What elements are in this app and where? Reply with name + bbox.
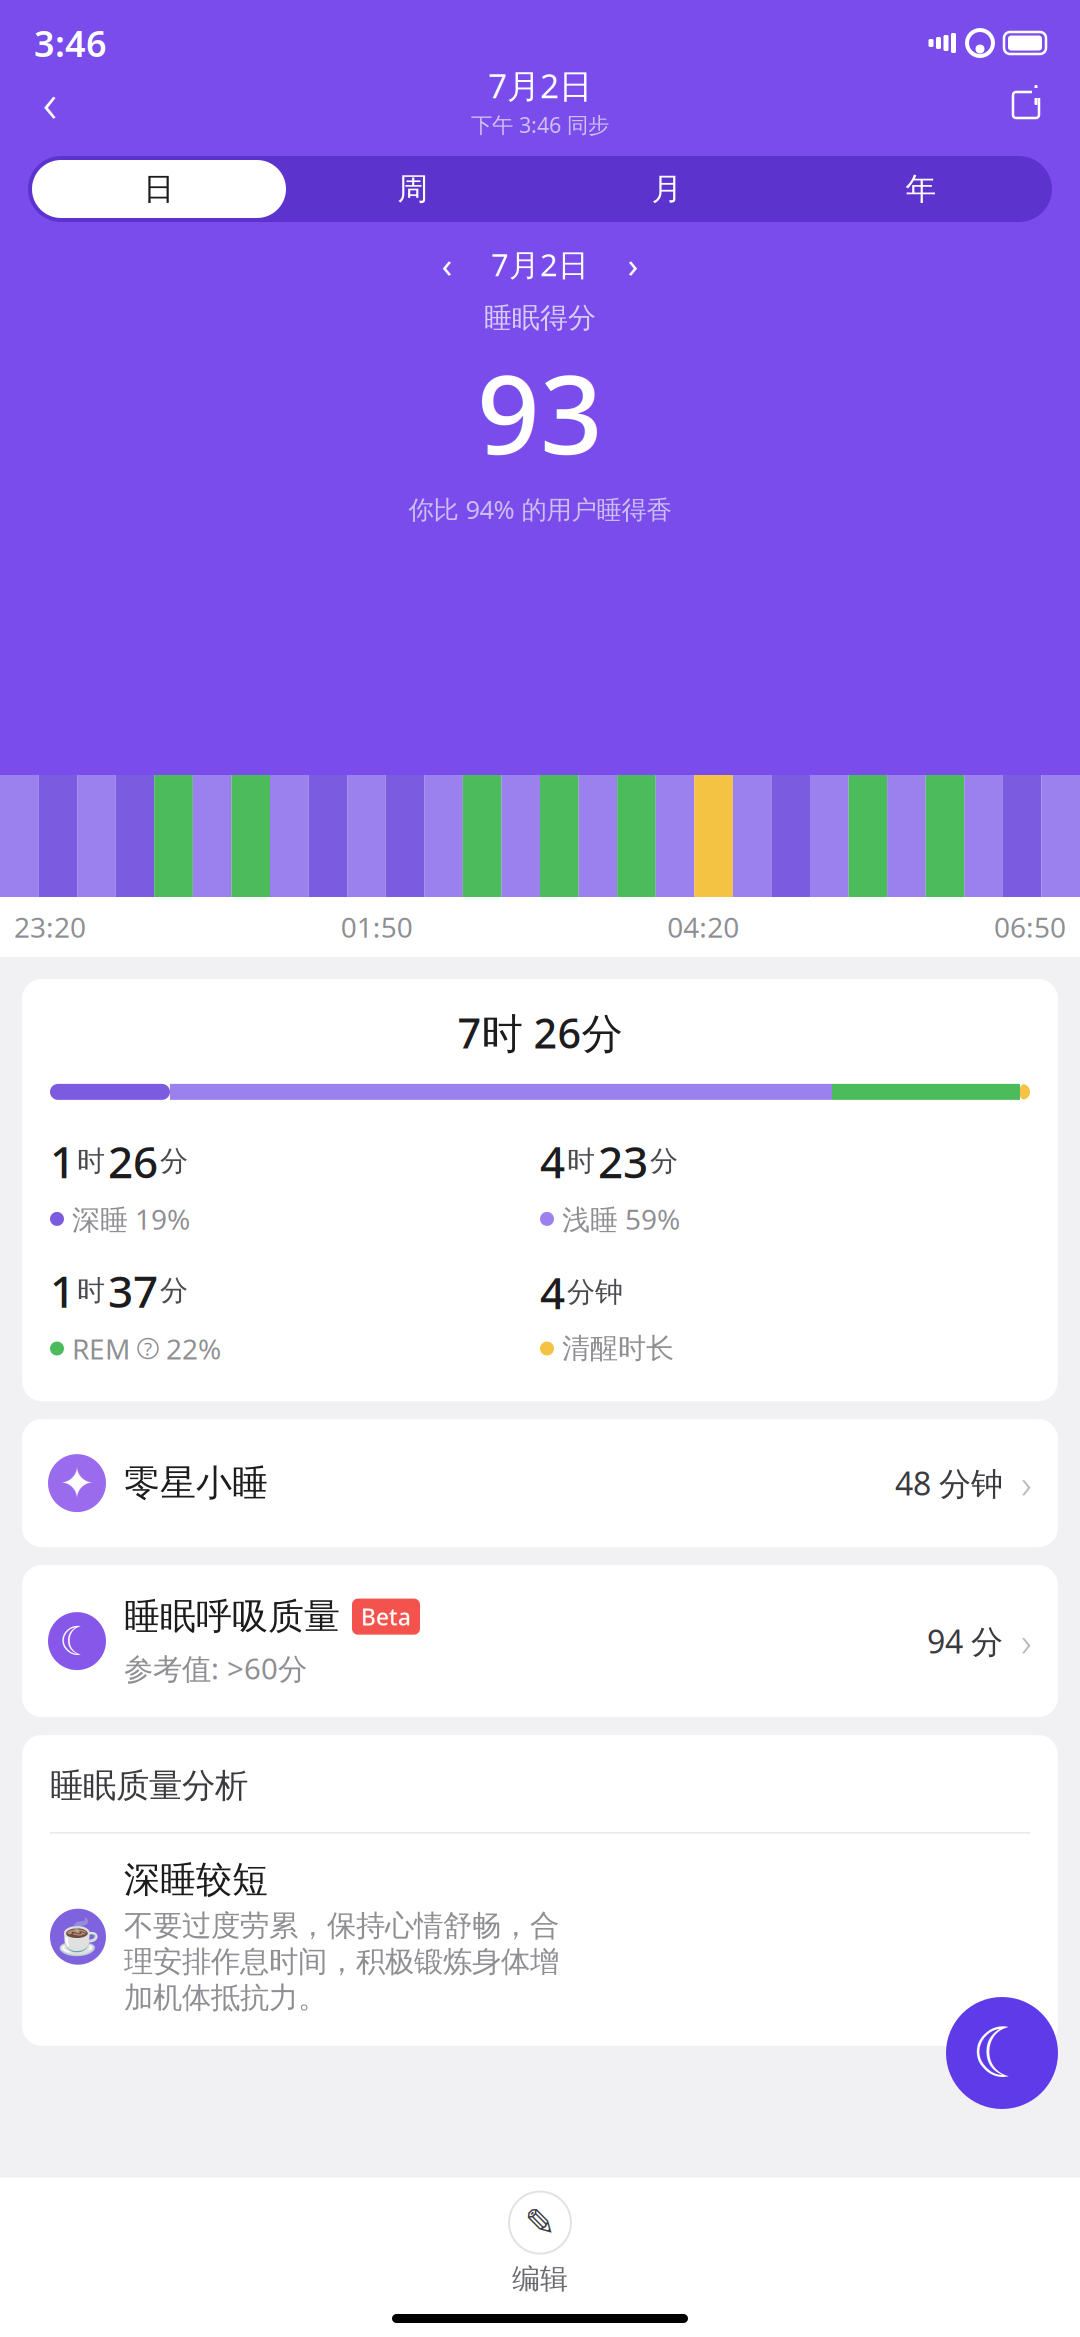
staticText: ☕ bbox=[56, 1917, 99, 1956]
staticText: 4 bbox=[540, 1132, 565, 1190]
staticText: 时 bbox=[567, 1144, 595, 1178]
button[interactable]: 日 bbox=[32, 160, 286, 218]
staticText: 7月2日 bbox=[491, 244, 589, 285]
staticText: ✎ bbox=[524, 2201, 555, 2244]
staticText: 1 bbox=[50, 1261, 75, 1320]
staticText: 参考值: >60分 bbox=[124, 1649, 307, 1688]
button[interactable]: 月 bbox=[540, 160, 794, 218]
staticText: 48 分钟 bbox=[895, 1462, 1003, 1504]
staticText: ✦ bbox=[59, 1459, 95, 1507]
button[interactable]: 前一天 bbox=[429, 246, 465, 282]
button[interactable]: 睡眠助眠 bbox=[946, 1997, 1058, 2109]
staticText: 时 bbox=[77, 1144, 105, 1178]
staticText: 你比 94% 的用户睡得香 bbox=[408, 492, 671, 526]
staticText: › bbox=[1021, 1615, 1032, 1668]
staticText: 日 bbox=[143, 170, 174, 208]
staticText: 深睡 19% bbox=[72, 1200, 190, 1237]
staticText: 分 bbox=[160, 1273, 188, 1308]
staticText: 04:20 bbox=[667, 908, 739, 946]
staticText: 周 bbox=[397, 170, 428, 208]
staticText: REM bbox=[72, 1330, 130, 1367]
staticText: 26 bbox=[108, 1132, 158, 1190]
staticText: 23 bbox=[598, 1132, 648, 1190]
staticText: 月 bbox=[651, 170, 682, 208]
staticText: 睡眠得分 bbox=[484, 301, 596, 335]
staticText: 睡眠质量分析 bbox=[50, 1765, 248, 1806]
staticText: 06:50 bbox=[994, 908, 1066, 946]
button[interactable]: 返回 bbox=[22, 73, 78, 129]
staticText: 分钟 bbox=[567, 1275, 623, 1309]
staticText: 编辑 bbox=[512, 2262, 568, 2296]
staticText: 零星小睡 bbox=[124, 1461, 268, 1505]
button[interactable]: ☾ bbox=[22, 1565, 1058, 1717]
staticText: ☾ bbox=[59, 1618, 95, 1664]
staticText: ‹ bbox=[441, 241, 452, 287]
staticText: 浅睡 59% bbox=[562, 1200, 680, 1237]
staticText: 23:20 bbox=[14, 908, 86, 946]
button[interactable]: 年 bbox=[794, 160, 1048, 218]
button[interactable]: 后一天 bbox=[615, 246, 651, 282]
staticText: 7时 26分 bbox=[457, 1005, 622, 1060]
staticText: ☾ bbox=[971, 2014, 1033, 2092]
staticText: › bbox=[627, 241, 638, 287]
button[interactable]: ✦ bbox=[22, 1419, 1058, 1547]
staticText: › bbox=[1021, 1457, 1032, 1510]
staticText: 1 bbox=[50, 1132, 75, 1190]
staticText: 93 bbox=[477, 339, 603, 484]
staticText: 时 bbox=[77, 1273, 105, 1308]
staticText: 清醒时长 bbox=[562, 1331, 674, 1366]
staticText: ‹ bbox=[42, 64, 57, 138]
staticText: 不要过度劳累，保持心情舒畅，合理安排作息时间，积极锻炼身体增加机体抵抗力。 bbox=[124, 1908, 559, 2016]
staticText: 01:50 bbox=[341, 908, 413, 946]
button[interactable]: 分享 bbox=[1002, 73, 1058, 129]
staticText: 深睡较短 bbox=[124, 1858, 268, 1902]
staticText: 3:46 bbox=[34, 19, 107, 67]
staticText: 分 bbox=[650, 1144, 678, 1178]
staticText: 4 bbox=[540, 1263, 565, 1321]
button[interactable]: ✎ bbox=[470, 2192, 610, 2296]
staticText: ? bbox=[144, 1336, 152, 1361]
staticText: 22% bbox=[166, 1330, 221, 1367]
staticText: Beta bbox=[361, 1602, 411, 1632]
staticText: 7月2日 bbox=[488, 63, 592, 107]
staticText: 分 bbox=[160, 1144, 188, 1178]
staticText: 年 bbox=[905, 170, 936, 208]
staticText: 94 分 bbox=[927, 1620, 1003, 1662]
staticText: 睡眠呼吸质量 bbox=[124, 1594, 340, 1639]
button[interactable]: 周 bbox=[286, 160, 540, 218]
staticText: 37 bbox=[108, 1261, 158, 1320]
staticText: 下午 3:46 同步 bbox=[471, 110, 609, 139]
